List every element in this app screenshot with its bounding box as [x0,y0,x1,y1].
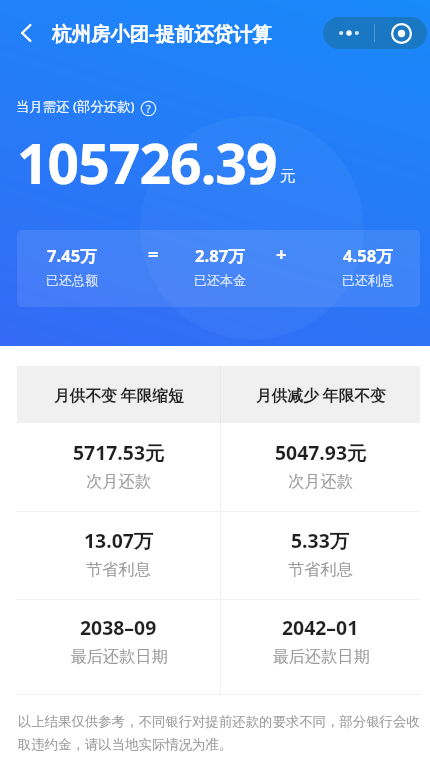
staticText: 杭州房小团-提前还贷计算 [52,20,272,46]
staticText: 月供不变 年限缩短 [54,384,184,405]
button[interactable]: Back [8,15,44,51]
staticText: 月供减少 年限不变 [256,384,386,405]
button[interactable]: 5047.93元 [221,423,420,511]
staticText: 次月还款 [86,471,151,491]
staticText: 105726.39 [17,125,277,200]
staticText: + [276,241,287,263]
staticText: 13.07万 [84,527,154,553]
staticText: 7.45万 [47,244,97,267]
staticText: 5.33万 [291,527,350,553]
staticText: ? [146,102,151,116]
button[interactable]: More options [323,17,374,49]
staticText: 最后还款日期 [272,646,370,666]
staticText: 2042–01 [282,614,359,640]
staticText: 4.58万 [343,244,393,267]
button[interactable]: Close mini program [375,17,427,49]
staticText: 2038–09 [80,614,157,640]
staticText: 2.87万 [195,244,245,267]
staticText: = [148,241,159,263]
button[interactable]: 2038–09 [17,600,220,694]
staticText: 当月需还 (部分还款) [16,97,135,115]
button[interactable]: 2042–01 [221,600,420,694]
staticText: 次月还款 [288,471,353,491]
staticText: 已还利息 [342,272,394,288]
staticText: 已还本金 [194,272,246,288]
button[interactable]: 13.07万 [17,512,220,599]
staticText: 以上结果仅供参考，不同银行对提前还款的要求不同，部分银行会收取违约金，请以当地实… [18,713,421,753]
staticText: 节省利息 [288,559,353,579]
button[interactable]: 5.33万 [221,512,420,599]
staticText: 元 [280,166,296,186]
staticText: 5717.53元 [73,439,165,465]
staticText: 最后还款日期 [70,646,168,666]
button[interactable]: 5717.53元 [17,423,220,511]
staticText: 节省利息 [86,559,151,579]
staticText: 已还总额 [46,272,98,288]
button[interactable]: Help [140,100,156,116]
staticText: 5047.93元 [275,439,367,465]
